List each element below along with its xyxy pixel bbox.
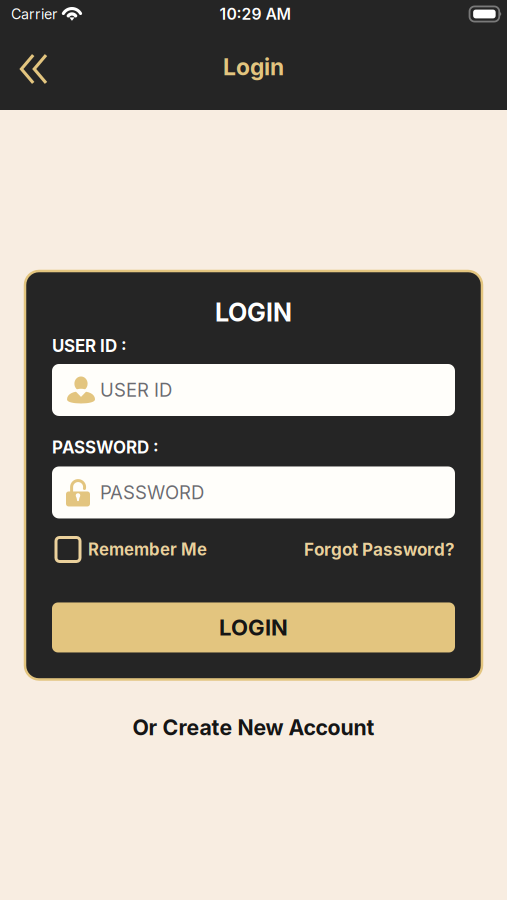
button[interactable]: Forgot Password?	[304, 539, 455, 560]
staticText: Or Create New Account	[132, 714, 374, 740]
staticText: Carrier	[11, 5, 57, 23]
staticText: LOGIN	[215, 297, 292, 327]
staticText: Login	[223, 53, 284, 81]
staticText: 10:29 AM	[219, 4, 291, 23]
button[interactable]: Or Create New Account	[120, 709, 386, 745]
staticText: PASSWORD :	[52, 437, 159, 457]
button[interactable]: Remember Me	[52, 537, 207, 561]
staticText: Remember Me	[88, 539, 207, 560]
staticText: USER ID	[100, 379, 172, 401]
button[interactable]: Back	[0, 40, 63, 97]
staticText: USER ID :	[52, 335, 127, 356]
button[interactable]: LOGIN	[52, 602, 455, 652]
staticText: Forgot Password?	[304, 539, 455, 560]
staticText: LOGIN	[219, 614, 288, 641]
staticText: PASSWORD	[100, 481, 204, 504]
